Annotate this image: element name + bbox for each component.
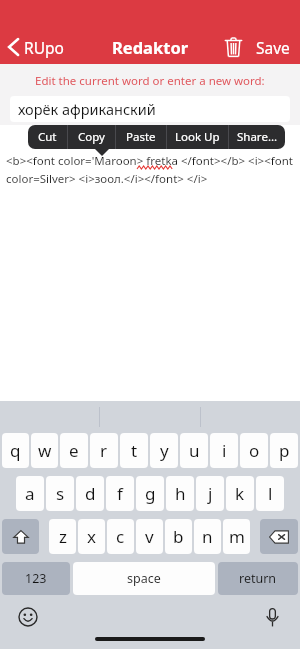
staticText: n: [202, 525, 213, 548]
button[interactable]: a: [16, 476, 44, 511]
button[interactable]: d: [76, 476, 104, 511]
staticText: m: [229, 525, 245, 548]
staticText: Copy: [78, 129, 105, 145]
staticText: u: [189, 439, 200, 462]
button[interactable]: j: [196, 476, 224, 511]
button[interactable]: e: [60, 433, 88, 468]
button[interactable]: Copy: [68, 125, 115, 149]
button[interactable]: k: [226, 476, 254, 511]
staticText: j: [208, 482, 213, 505]
staticText: q: [10, 439, 21, 462]
staticText: e: [69, 439, 79, 462]
button[interactable]: q: [2, 433, 29, 468]
button[interactable]: Paste: [116, 125, 166, 149]
button[interactable]: Save: [250, 30, 296, 64]
staticText: RUpo: [24, 37, 64, 58]
staticText: z: [59, 525, 67, 548]
button[interactable]: RUpo: [0, 30, 74, 64]
staticText: Edit the current word or enter a new wor…: [35, 73, 265, 89]
staticText: Share…: [237, 129, 277, 145]
button[interactable]: x: [78, 519, 105, 554]
staticText: Paste: [126, 129, 156, 145]
button[interactable]: p: [270, 433, 298, 468]
staticText: k: [235, 482, 245, 505]
button[interactable]: t: [120, 433, 148, 468]
staticText: space: [127, 570, 161, 587]
button[interactable]: i: [210, 433, 238, 468]
button[interactable]: h: [166, 476, 194, 511]
staticText: g: [145, 482, 156, 505]
staticText: c: [116, 525, 125, 548]
staticText: <b><font color='Maroon> fretka </font></…: [6, 153, 293, 169]
button[interactable]: y: [150, 433, 178, 468]
staticText: Save: [256, 37, 290, 58]
staticText: f: [117, 482, 123, 505]
button[interactable]: Shift: [2, 519, 39, 554]
button[interactable]: Look Up: [167, 125, 228, 149]
staticText: t: [131, 439, 138, 462]
button[interactable]: space: [73, 562, 215, 595]
button[interactable]: return: [218, 562, 298, 595]
button[interactable]: Share…: [229, 125, 285, 149]
staticText: a: [25, 482, 35, 505]
staticText: x: [87, 525, 96, 548]
button[interactable]: r: [90, 433, 118, 468]
button[interactable]: c: [107, 519, 134, 554]
button[interactable]: n: [194, 519, 221, 554]
staticText: color=Silver> <i>зоол.</i></font> </i>: [6, 171, 208, 187]
button[interactable]: g: [136, 476, 164, 511]
staticText: r: [100, 439, 108, 462]
button[interactable]: f: [106, 476, 134, 511]
staticText: o: [249, 439, 260, 462]
button[interactable]: Emoji: [14, 603, 42, 631]
staticText: Cut: [38, 129, 57, 145]
button[interactable]: u: [180, 433, 208, 468]
button[interactable]: b: [165, 519, 192, 554]
staticText: h: [175, 482, 186, 505]
staticText: v: [145, 525, 154, 548]
button[interactable]: z: [49, 519, 76, 554]
staticText: Look Up: [175, 129, 220, 145]
staticText: b: [173, 525, 184, 548]
button[interactable]: хорёк африканский: [10, 96, 290, 122]
button[interactable]: w: [31, 433, 58, 468]
button[interactable]: Cut: [28, 125, 67, 149]
button[interactable]: m: [223, 519, 250, 554]
button[interactable]: 123: [2, 562, 70, 595]
staticText: p: [279, 439, 290, 462]
staticText: i: [222, 439, 227, 462]
staticText: return: [239, 570, 277, 587]
staticText: d: [85, 482, 96, 505]
button[interactable]: l: [256, 476, 284, 511]
staticText: y: [160, 439, 169, 462]
staticText: хорёк африканский: [18, 99, 156, 119]
button[interactable]: o: [240, 433, 268, 468]
staticText: l: [268, 482, 273, 505]
staticText: w: [38, 439, 52, 462]
staticText: Redaktor: [112, 36, 189, 58]
staticText: s: [56, 482, 65, 505]
button[interactable]: v: [136, 519, 163, 554]
button[interactable]: Dictation: [258, 603, 286, 631]
staticText: 123: [25, 570, 47, 587]
button[interactable]: Delete: [216, 30, 250, 64]
button[interactable]: s: [46, 476, 74, 511]
button[interactable]: Backspace: [260, 519, 298, 554]
